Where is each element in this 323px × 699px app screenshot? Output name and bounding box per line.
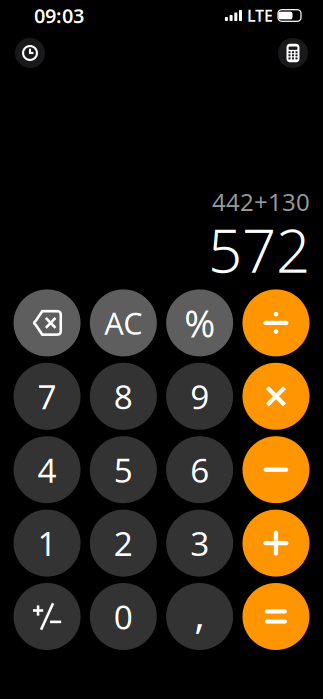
staticText: AC (104, 302, 142, 343)
button[interactable]: , (166, 583, 233, 650)
staticText: 2 (114, 521, 133, 565)
staticText: 1 (38, 521, 57, 565)
button[interactable]: 7 (14, 363, 81, 430)
button[interactable]: Delete (14, 289, 81, 356)
button[interactable]: 3 (166, 510, 233, 577)
button[interactable]: Equals (242, 583, 309, 650)
button[interactable]: 1 (14, 510, 81, 577)
staticText: 8 (114, 374, 133, 418)
button[interactable]: Plus (242, 510, 309, 577)
button[interactable]: AC (90, 289, 157, 356)
button[interactable]: Plus minus (14, 583, 81, 650)
staticText: LTE (247, 5, 273, 26)
button[interactable]: 4 (14, 436, 81, 503)
button[interactable]: 2 (90, 510, 157, 577)
staticText: % (184, 298, 215, 348)
button[interactable]: Minus (242, 436, 309, 503)
button[interactable]: 6 (166, 436, 233, 503)
button[interactable]: 5 (90, 436, 157, 503)
button[interactable]: 0 (90, 583, 157, 650)
button[interactable]: Divide (242, 289, 309, 356)
button[interactable]: History (15, 38, 45, 68)
staticText: 4 (38, 448, 57, 492)
button[interactable]: Calculator mode (278, 38, 308, 68)
staticText: 0 (114, 594, 133, 639)
staticText: 7 (38, 374, 57, 418)
staticText: 6 (190, 448, 209, 492)
staticText: 09:03 (34, 2, 84, 29)
button[interactable]: 9 (166, 363, 233, 430)
staticText: 9 (190, 374, 209, 418)
button[interactable]: % (166, 289, 233, 356)
button[interactable]: Multiply (242, 363, 309, 430)
staticText: 3 (190, 521, 209, 565)
staticText: 572 (208, 210, 310, 289)
staticText: 442+130 (212, 186, 310, 218)
staticText: 5 (114, 448, 133, 492)
button[interactable]: 8 (90, 363, 157, 430)
staticText: , (194, 587, 205, 640)
